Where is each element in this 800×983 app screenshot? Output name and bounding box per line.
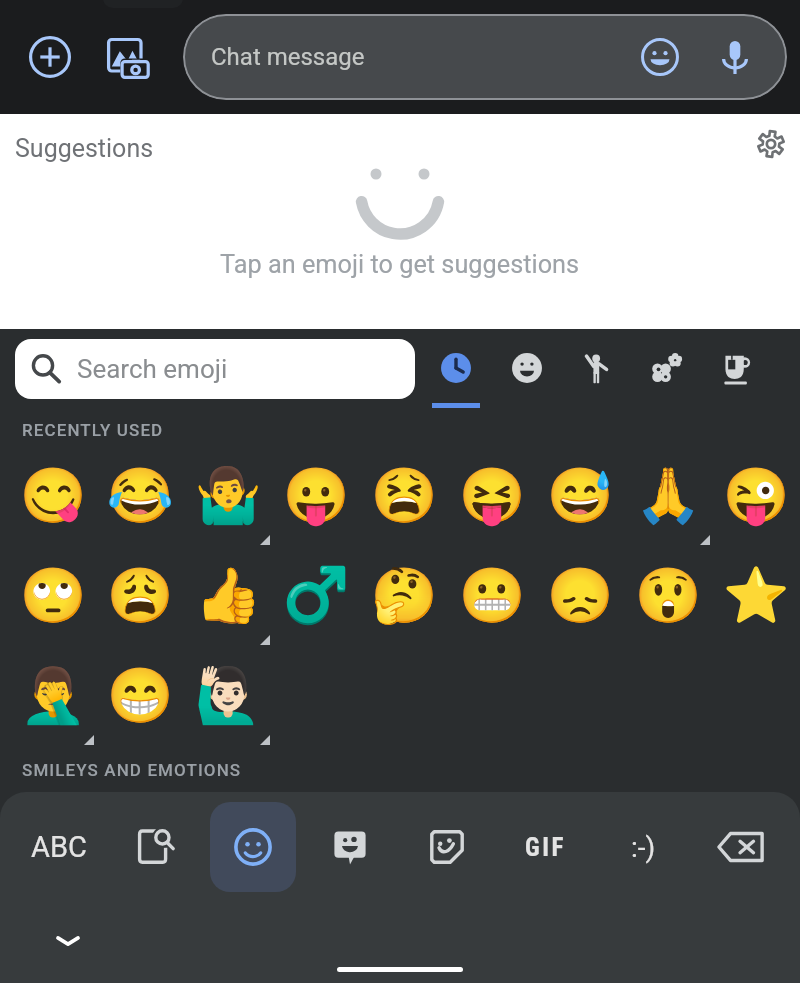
button[interactable]: 😋 — [9, 445, 96, 545]
staticText: Search emoji — [77, 354, 228, 384]
button[interactable]: Emoji stickers — [301, 792, 398, 902]
staticText: 😁 — [106, 664, 174, 727]
button[interactable]: Emoticons — [594, 792, 692, 902]
button[interactable]: 🙏 — [624, 445, 712, 545]
button[interactable]: Emoji keyboard — [210, 802, 296, 892]
staticText: ♂️ — [282, 564, 350, 627]
staticText: Chat message — [211, 43, 365, 71]
button[interactable]: ⭐ — [712, 545, 800, 645]
staticText: 🤦‍♂️ — [19, 664, 87, 727]
button[interactable]: 😞 — [536, 545, 624, 645]
button[interactable]: Voice input — [705, 27, 765, 87]
staticText: 😲 — [634, 564, 702, 627]
button[interactable]: ABC keyboard — [10, 792, 107, 902]
button[interactable]: Smileys and emotions — [492, 333, 562, 403]
button[interactable]: 🙄 — [9, 545, 96, 645]
staticText: RECENTLY USED — [22, 420, 164, 440]
button[interactable]: Settings — [743, 116, 799, 172]
button[interactable]: Custom stickers — [398, 792, 496, 902]
staticText: 😩 — [106, 564, 174, 627]
button[interactable]: Gallery and camera — [87, 17, 167, 97]
button[interactable]: 😂 — [96, 445, 184, 545]
button[interactable]: Recently used — [421, 333, 491, 403]
staticText: :-) — [631, 831, 656, 864]
button[interactable]: ♂️ — [272, 545, 360, 645]
button[interactable]: Animals and nature — [632, 333, 702, 403]
button[interactable]: GIF — [496, 792, 594, 902]
button[interactable]: 😛 — [272, 445, 360, 545]
button[interactable]: 😲 — [624, 545, 712, 645]
staticText: 😝 — [458, 464, 526, 527]
button[interactable]: 😫 — [360, 445, 448, 545]
staticText: 😂 — [106, 464, 174, 527]
staticText: Suggestions — [15, 134, 154, 163]
button[interactable]: Backspace — [692, 792, 790, 902]
button[interactable]: Search emoji — [15, 339, 415, 399]
button[interactable]: 😜 — [712, 445, 800, 545]
staticText: ⭐ — [722, 564, 790, 627]
staticText: 😜 — [722, 464, 790, 527]
staticText: 😫 — [370, 464, 438, 527]
button[interactable]: 🤷‍♂️ — [184, 445, 272, 545]
staticText: 🙏 — [634, 464, 702, 527]
staticText: 😞 — [546, 564, 614, 627]
button[interactable]: 😅 — [536, 445, 624, 545]
button[interactable]: People and body — [562, 333, 632, 403]
button[interactable]: 😬 — [448, 545, 536, 645]
staticText: 🤷‍♂️ — [194, 464, 262, 527]
button[interactable]: Hide keyboard — [43, 916, 93, 966]
button[interactable]: 😁 — [96, 645, 184, 745]
button[interactable]: 👍 — [184, 545, 272, 645]
button[interactable]: Emoji — [630, 27, 690, 87]
staticText: 😛 — [282, 464, 350, 527]
button[interactable]: 😩 — [96, 545, 184, 645]
button[interactable]: 😝 — [448, 445, 536, 545]
staticText: 😋 — [19, 464, 87, 527]
staticText: 👍 — [194, 564, 262, 627]
button[interactable]: 🤦‍♂️ — [9, 645, 96, 745]
staticText: SMILEYS AND EMOTIONS — [22, 760, 242, 780]
button[interactable]: Search stickers — [107, 792, 204, 902]
staticText: 🤔 — [370, 564, 438, 627]
staticText: 😅 — [546, 464, 614, 527]
staticText: GIF — [525, 833, 566, 862]
button[interactable]: Chat message — [183, 14, 787, 100]
staticText: 🙄 — [19, 564, 87, 627]
staticText: 🙋🏻‍♂️ — [194, 664, 262, 727]
button[interactable]: 🙋🏻‍♂️ — [184, 645, 272, 745]
staticText: ABC — [31, 830, 87, 864]
staticText: 😬 — [458, 564, 526, 627]
button[interactable]: Add attachment — [10, 17, 90, 97]
button[interactable]: 🤔 — [360, 545, 448, 645]
staticText: Tap an emoji to get suggestions — [220, 250, 580, 280]
button[interactable]: Food and drink — [702, 333, 772, 403]
